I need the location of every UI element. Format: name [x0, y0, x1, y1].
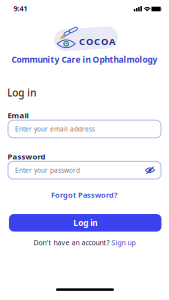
staticText: 9:41	[13, 3, 27, 13]
staticText: Email	[8, 110, 29, 120]
staticText: Log in	[73, 217, 97, 228]
staticText: Password	[8, 151, 46, 162]
staticText: Enter your password	[15, 166, 80, 174]
staticText: Log in	[7, 86, 36, 99]
staticText: C O C O A	[79, 35, 115, 48]
staticText: Enter your email address	[15, 125, 95, 133]
staticText: Community Care in Ophthalmology	[11, 54, 157, 65]
staticText: Don't have an account?	[34, 238, 110, 247]
staticText: Forgot Password?	[51, 190, 117, 200]
staticText: Sign up	[112, 238, 136, 247]
